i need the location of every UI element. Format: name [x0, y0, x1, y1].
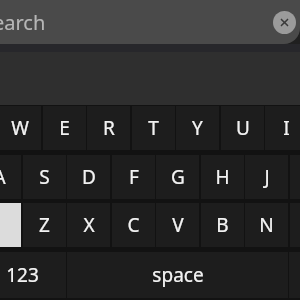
staticText: E — [59, 115, 70, 141]
button[interactable]: U — [221, 106, 264, 150]
staticText: Search — [0, 9, 46, 36]
staticText: U — [236, 115, 250, 141]
button[interactable]: A — [0, 155, 21, 199]
button[interactable]: X — [67, 203, 110, 247]
button[interactable]: D — [67, 155, 110, 199]
staticText: X — [83, 212, 95, 238]
button[interactable]: Z — [23, 203, 66, 247]
button[interactable]: Clear search — [273, 11, 296, 34]
button[interactable]: Search — [0, 0, 300, 44]
staticText: 123 — [6, 262, 39, 288]
button[interactable]: C — [112, 203, 155, 247]
staticText: D — [82, 164, 96, 190]
button[interactable]: R — [87, 106, 130, 150]
button[interactable]: E — [43, 106, 86, 150]
staticText: W — [11, 115, 29, 141]
staticText: J — [264, 164, 270, 190]
staticText: space — [152, 262, 204, 288]
button[interactable]: 123 — [0, 252, 66, 298]
button[interactable]: I — [265, 106, 300, 150]
staticText: V — [172, 212, 184, 238]
button[interactable]: Y — [176, 106, 219, 150]
button[interactable]: H — [201, 155, 244, 199]
staticText: B — [216, 212, 229, 238]
button[interactable]: J — [245, 155, 288, 199]
staticText: I — [283, 115, 290, 141]
button[interactable]: G — [156, 155, 199, 199]
button[interactable]: V — [156, 203, 199, 247]
staticText: C — [127, 212, 140, 238]
button[interactable]: space — [67, 252, 288, 298]
staticText: N — [259, 212, 274, 238]
staticText: Y — [192, 115, 203, 141]
staticText: F — [129, 164, 139, 190]
button[interactable]: T — [132, 106, 175, 150]
button[interactable]: N — [245, 203, 288, 247]
button[interactable]: B — [201, 203, 244, 247]
staticText: A — [0, 164, 6, 190]
staticText: Z — [39, 212, 50, 238]
staticText: T — [148, 115, 159, 141]
staticText: G — [171, 164, 185, 190]
button[interactable]: W — [0, 106, 41, 150]
button[interactable]: F — [112, 155, 155, 199]
staticText: H — [215, 164, 230, 190]
button[interactable]: S — [23, 155, 66, 199]
staticText: R — [103, 115, 115, 141]
staticText: S — [39, 164, 50, 190]
